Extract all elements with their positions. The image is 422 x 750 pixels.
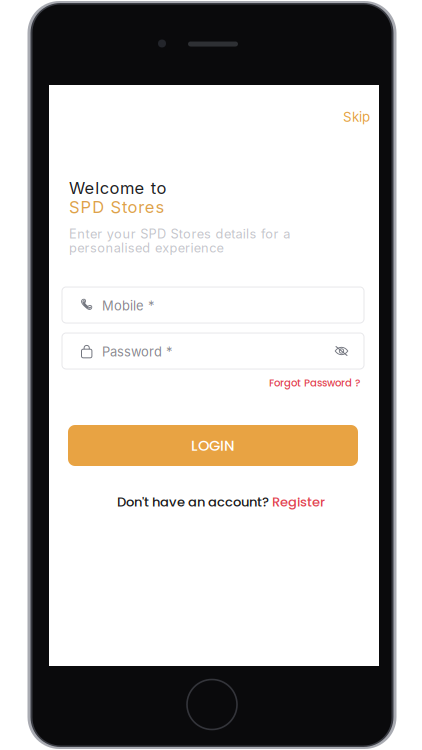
button[interactable]: Skip (322, 106, 370, 128)
staticText: Welcome to (69, 178, 166, 198)
staticText: Don't have an account? (117, 493, 272, 511)
staticText: Forgot Password ? (269, 376, 360, 390)
staticText: LOGIN (191, 435, 235, 456)
button[interactable]: Forgot Password ? (240, 376, 360, 390)
staticText: Skip (343, 109, 370, 125)
staticText: Enter your SPD Stores details for a (69, 226, 290, 241)
staticText: Register (272, 493, 325, 511)
button[interactable]: LOGIN (68, 425, 358, 466)
staticText: Mobile * (102, 298, 154, 314)
staticText: Password * (102, 344, 172, 360)
staticText: personalised experience (69, 240, 224, 255)
button[interactable]: Register (272, 493, 325, 511)
staticText: SPD Stores (69, 197, 164, 217)
